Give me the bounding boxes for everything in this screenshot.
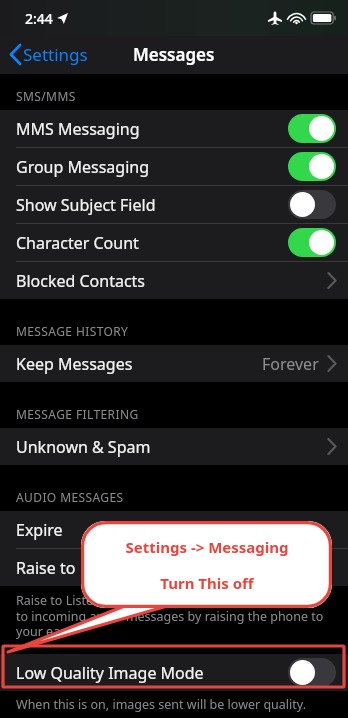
staticText: Blocked Contacts (16, 270, 146, 292)
staticText: MMS Messaging (16, 118, 140, 140)
staticText: AUDIO MESSAGES (16, 489, 124, 505)
staticText: Character Count (16, 232, 139, 254)
button[interactable]: MMS Messaging (0, 110, 348, 148)
staticText: Expire (16, 519, 63, 541)
staticText: Keep Messages (16, 353, 133, 375)
staticText: SMS/MMS (16, 88, 76, 104)
staticText: When this is on, images sent will be low… (16, 696, 307, 713)
staticText: Low Quality Image Mode (16, 662, 204, 684)
staticText: MESSAGE HISTORY (16, 323, 129, 339)
staticText: Show Subject Field (16, 194, 156, 216)
button[interactable]: Low Quality Image Mode (0, 654, 348, 691)
button[interactable]: Show Subject Field (0, 186, 348, 224)
staticText: Forever (262, 353, 319, 375)
staticText: Raise to Listen allows you to quickly li… (16, 592, 332, 639)
button[interactable]: Character Count (0, 224, 348, 262)
button[interactable]: Settings (10, 43, 94, 66)
staticText: Raise to Listen (16, 557, 125, 579)
staticText: MESSAGE FILTERING (16, 406, 139, 422)
staticText: 2:44 (25, 9, 53, 28)
staticText: Settings (23, 43, 88, 66)
staticText: Settings -> Messaging (125, 537, 289, 557)
button[interactable]: Toggle on (288, 114, 336, 143)
staticText: Unknown & Spam (16, 436, 151, 458)
button[interactable]: Expire (0, 511, 348, 549)
button[interactable]: Group Messaging (0, 148, 348, 186)
button[interactable]: Toggle on (288, 152, 336, 181)
button[interactable]: Blocked Contacts (0, 262, 348, 299)
button[interactable]: Unknown & Spam (0, 428, 348, 465)
button[interactable]: Toggle on (288, 228, 336, 257)
button[interactable]: Keep Messages (0, 345, 348, 382)
staticText: Messages (133, 43, 215, 66)
staticText: Group Messaging (16, 156, 150, 178)
button[interactable]: Toggle off (288, 190, 336, 219)
staticText: Turn This off (160, 573, 254, 593)
button[interactable]: Toggle off (288, 658, 336, 687)
button[interactable]: Raise to Listen (0, 549, 348, 586)
